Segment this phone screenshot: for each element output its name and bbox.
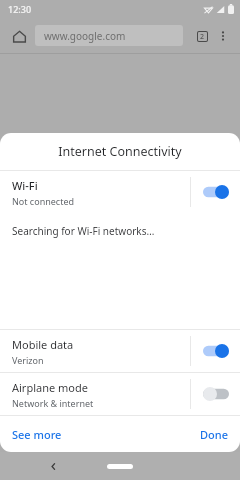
staticText: 2 — [200, 32, 205, 41]
staticText: Done — [200, 427, 228, 442]
button[interactable]: Wi-Fi — [0, 171, 240, 213]
button[interactable] — [191, 171, 240, 213]
button[interactable]: Mobile data — [0, 330, 240, 372]
staticText: See more — [12, 427, 62, 442]
button[interactable]: Airplane mode — [0, 373, 240, 415]
button[interactable]: More options — [213, 26, 233, 46]
button[interactable]: www.google.com — [35, 25, 183, 46]
button[interactable] — [191, 330, 240, 372]
staticText: Verizon — [12, 354, 44, 366]
button[interactable] — [191, 373, 240, 415]
button[interactable]: See more — [12, 427, 62, 442]
staticText: Internet Connectivity — [58, 143, 182, 160]
staticText: Airplane mode — [12, 380, 88, 395]
staticText: 12:30 — [8, 3, 32, 15]
button[interactable]: Back — [44, 457, 62, 475]
button[interactable]: Done — [200, 427, 228, 442]
staticText: Mobile data — [12, 337, 74, 352]
staticText: Searching for Wi-Fi networks… — [12, 224, 155, 238]
staticText: Wi-Fi — [12, 178, 38, 193]
staticText: Not connected — [12, 195, 75, 207]
button[interactable]: Tabs — [191, 25, 213, 47]
button[interactable]: Home — [7, 24, 31, 48]
staticText: Network & internet — [12, 397, 94, 409]
button[interactable]: Home — [107, 464, 133, 469]
staticText: www.google.com — [44, 29, 126, 43]
